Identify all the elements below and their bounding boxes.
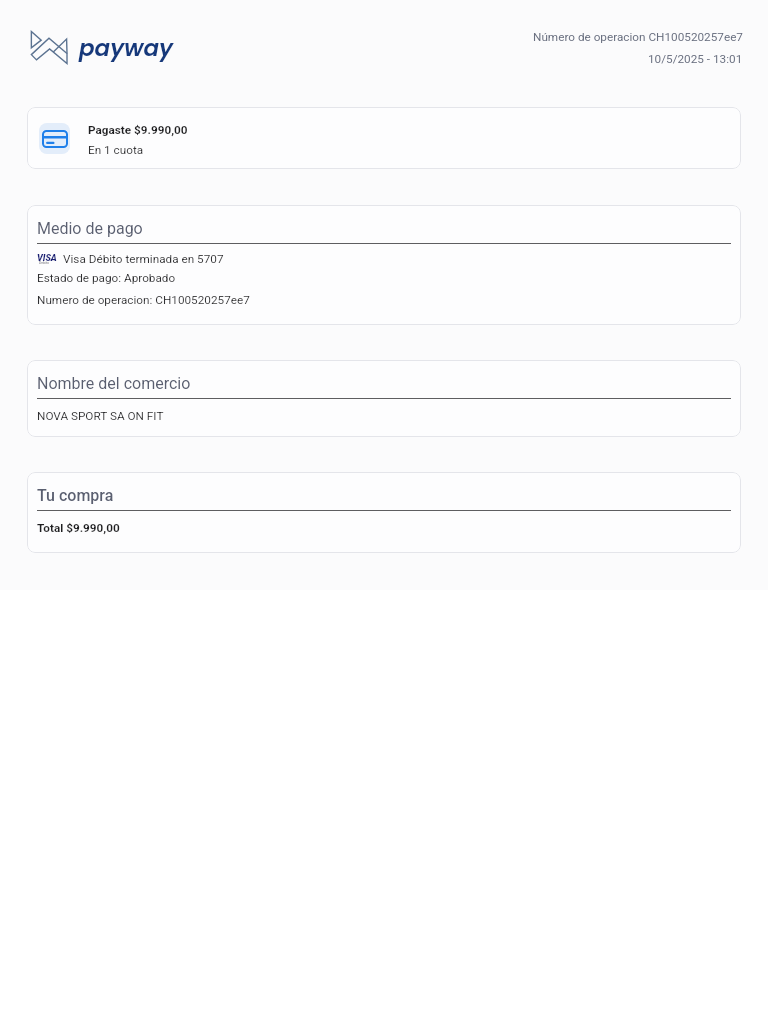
staticText: Numero de operacion: CH100520257ee7 [37,293,250,307]
staticText: Debito [39,261,50,265]
button[interactable]: Tu compra [27,472,741,553]
button[interactable]: Pagaste 9.990,00 pesos en 1 cuota [27,107,741,169]
button[interactable]: Payway home [31,31,174,64]
staticText: Pagaste $9.990,00 [88,123,188,137]
staticText: Nombre del comercio [37,374,191,393]
staticText: payway [79,32,174,64]
staticText: Total $9.990,00 [37,521,120,535]
staticText: Tu compra [37,486,114,505]
staticText: Número de operacion CH100520257ee7 [533,30,743,44]
staticText: NOVA SPORT SA ON FIT [37,409,164,423]
button[interactable]: Nombre del comercio [27,360,741,437]
staticText: 10/5/2025 - 13:01 [648,52,743,66]
staticText: Visa Débito terminada en 5707 [63,252,224,266]
button[interactable]: Medio de pago [27,205,741,325]
staticText: VISA [37,253,57,264]
staticText: Estado de pago: Aprobado [37,271,176,285]
staticText: En 1 cuota [88,143,144,157]
staticText: Medio de pago [37,219,143,238]
